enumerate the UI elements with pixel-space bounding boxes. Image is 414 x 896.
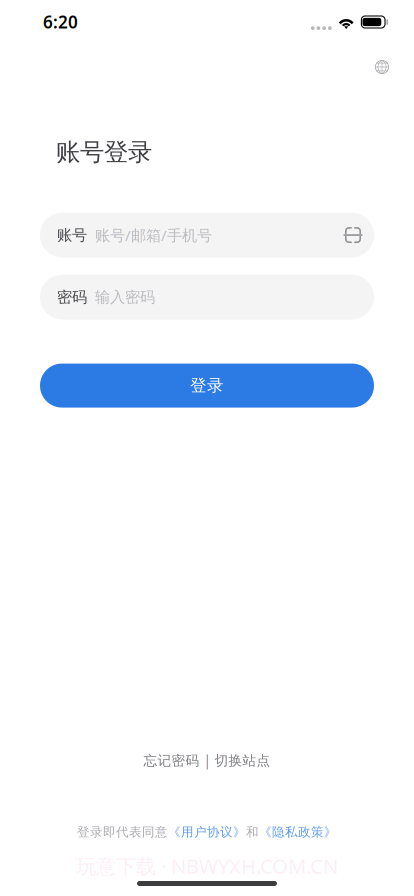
button[interactable]: 《隐私政策》 bbox=[259, 824, 337, 840]
staticText: 密码 bbox=[57, 287, 87, 307]
button[interactable]: 登录 bbox=[40, 364, 374, 408]
staticText: 《隐私政策》 bbox=[259, 824, 337, 840]
staticText: 玩意下载 · NBWYXH.COM.CN bbox=[76, 852, 338, 880]
staticText: 账号 bbox=[57, 225, 87, 245]
staticText: 《用户协议》 bbox=[168, 824, 246, 840]
button[interactable]: 忘记密码 | 切换站点 bbox=[131, 747, 282, 773]
button[interactable]: 《用户协议》 bbox=[168, 824, 246, 840]
button[interactable]: 扫码登录 bbox=[340, 220, 366, 250]
button[interactable]: 切换语言 bbox=[365, 51, 399, 83]
staticText: 6:20 bbox=[43, 10, 78, 34]
staticText: 账号登录 bbox=[56, 137, 152, 168]
staticText: 忘记密码 | 切换站点 bbox=[143, 751, 270, 769]
staticText: 和 bbox=[246, 824, 259, 840]
staticText: 输入密码 bbox=[95, 287, 155, 307]
staticText: 账号/邮箱/手机号 bbox=[95, 225, 212, 245]
staticText: 登录即代表同意 bbox=[77, 824, 168, 840]
staticText: 登录 bbox=[190, 375, 224, 396]
